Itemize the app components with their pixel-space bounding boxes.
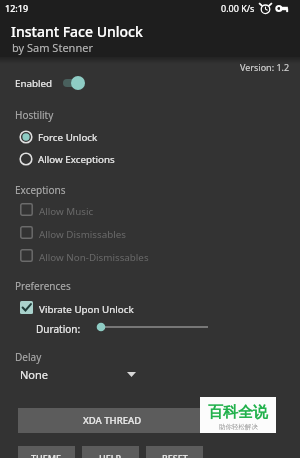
staticText: Allow Non-Dismissables [39,251,149,264]
button[interactable]: RESET [146,446,203,458]
button[interactable]: THEME [18,446,75,458]
staticText: None [20,367,49,382]
button[interactable]: Allow Dismissables [0,223,300,244]
staticText: 助你轻松解决 [219,423,258,431]
staticText: Version: 1.2 [240,61,290,73]
staticText: Instant Face Unlock [11,22,143,41]
button[interactable]: Force Unlock [0,126,300,147]
staticText: HELP [99,452,122,458]
staticText: Allow Exceptions [38,153,115,166]
staticText: Vibrate Upon Unlock [39,303,134,316]
staticText: Allow Music [39,205,94,218]
button[interactable]: XDA THREAD [18,408,207,433]
staticText: Enabled [15,77,53,90]
button[interactable]: Enabled [0,72,300,93]
staticText: Delay [15,350,42,364]
button[interactable]: Allow Music [0,200,300,221]
other: Expand delay options [127,372,136,377]
staticText: Allow Dismissables [39,228,127,241]
staticText: Hostility [15,108,54,122]
staticText: RESET [162,452,188,458]
staticText: 12:19 [5,2,29,14]
staticText: THEME [31,452,62,458]
button[interactable]: None [14,363,144,385]
other: VPN key [276,4,288,13]
staticText: XDA THREAD [83,414,142,427]
staticText: by Sam Stenner [12,40,93,55]
button[interactable]: Vibrate Upon Unlock [0,298,300,319]
staticText: 百科全说 [208,403,268,422]
staticText: Preferences [15,279,71,293]
staticText: Exceptions [15,183,66,197]
button[interactable]: Allow Non-Dismissables [0,246,300,267]
other: Alarm [260,3,271,14]
button[interactable]: HELP [82,446,139,458]
staticText: Force Unlock [38,131,98,144]
staticText: Duration: [36,322,81,336]
staticText: 0.00 K/s [221,2,255,14]
button[interactable]: Allow Exceptions [0,148,300,169]
